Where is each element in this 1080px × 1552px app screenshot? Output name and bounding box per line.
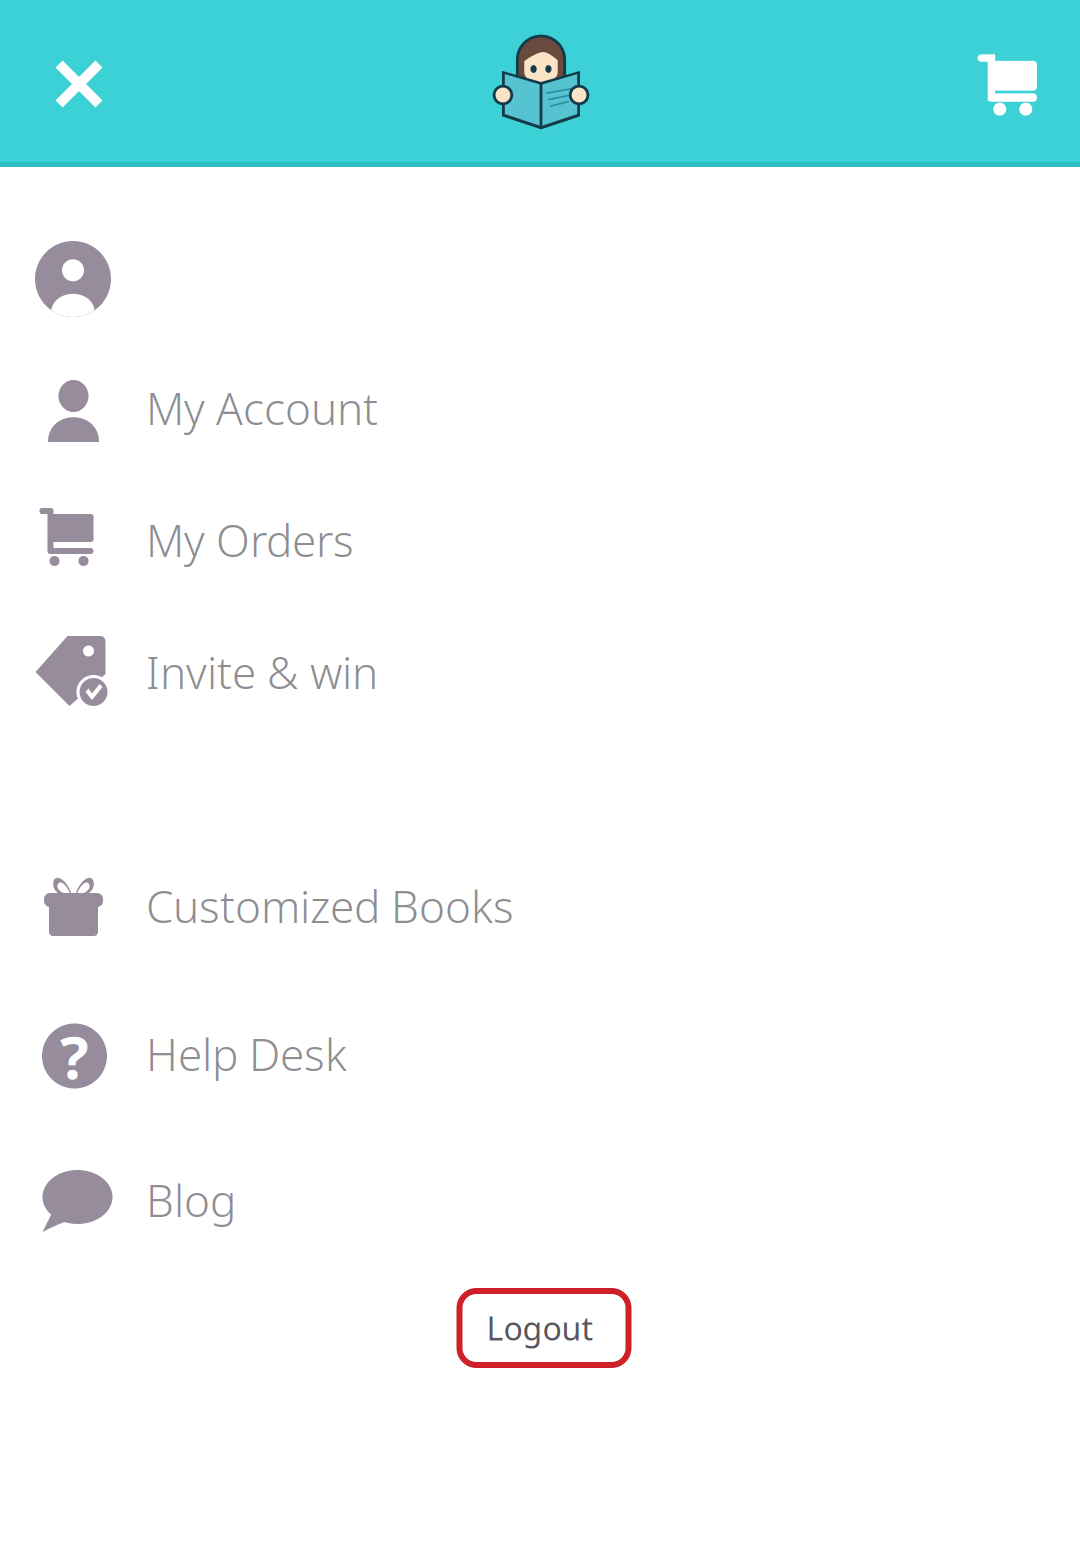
button[interactable]: Shopping cart [946, 25, 1056, 137]
button[interactable]: Customized Books [0, 861, 1080, 951]
staticText: Invite & win [146, 643, 378, 701]
staticText: Logout [486, 1307, 593, 1349]
staticText: ? [60, 1016, 89, 1096]
button[interactable]: My Account [0, 363, 1080, 453]
staticText: Blog [146, 1171, 236, 1229]
staticText: Help Desk [146, 1025, 347, 1083]
staticText: Customized Books [146, 877, 514, 935]
button[interactable]: My Orders [0, 495, 1080, 585]
button[interactable]: Invite & win [0, 627, 1080, 717]
staticText: My Account [146, 379, 378, 437]
button[interactable]: Blog [0, 1155, 1080, 1245]
staticText: My Orders [146, 511, 354, 569]
button[interactable]: Close menu [24, 25, 134, 137]
button[interactable]: Logout [456, 1288, 631, 1368]
button[interactable]: Profile [0, 241, 111, 317]
button[interactable]: ? [0, 1009, 1080, 1099]
